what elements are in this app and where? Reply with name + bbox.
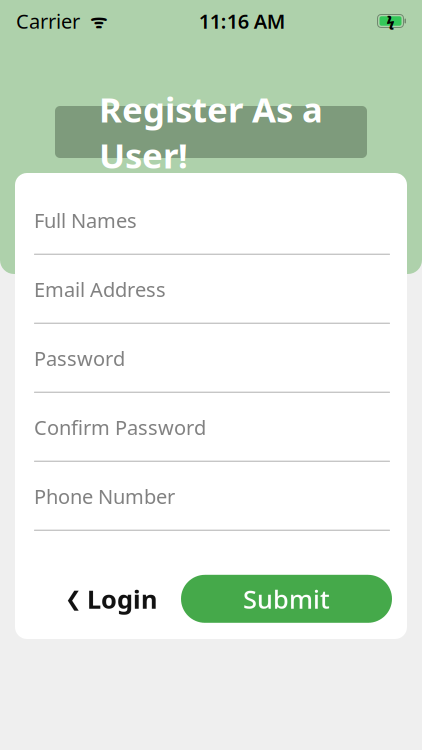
staticText: ❮ xyxy=(65,587,82,610)
staticText: Phone Number xyxy=(34,483,175,510)
button[interactable]: Confirm Password xyxy=(15,414,390,483)
staticText: Login xyxy=(87,582,157,616)
staticText: Full Names xyxy=(34,207,137,234)
staticText: 11:16 AM xyxy=(199,8,286,34)
staticText: Register As a User! xyxy=(99,86,323,178)
button[interactable]: Password xyxy=(15,345,390,414)
staticText: Carrier xyxy=(16,8,80,34)
staticText: Confirm Password xyxy=(34,414,206,441)
button[interactable]: Phone Number xyxy=(15,483,390,552)
button[interactable]: Email Address xyxy=(15,276,390,345)
staticText: ᯤ xyxy=(80,9,107,33)
staticText: ϟ xyxy=(386,11,394,31)
staticText: Password xyxy=(34,345,125,372)
button[interactable]: ❮ xyxy=(51,572,171,626)
button[interactable]: Submit xyxy=(181,575,392,623)
staticText: Submit xyxy=(243,582,330,616)
staticText: Email Address xyxy=(34,276,166,303)
button[interactable]: Full Names xyxy=(15,207,390,276)
